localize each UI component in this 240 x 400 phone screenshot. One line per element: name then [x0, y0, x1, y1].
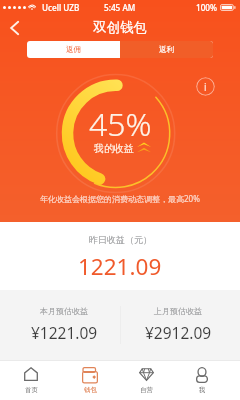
staticText: 1221.09 [78, 251, 162, 282]
staticText: 钱包 [84, 386, 97, 394]
staticText: 返佣 [66, 45, 81, 54]
staticText: 自营 [140, 386, 153, 394]
staticText: 首页 [25, 386, 38, 394]
staticText: 我的收益 [94, 142, 134, 155]
staticText: 上月预估收益 [154, 306, 202, 316]
staticText: 本月预估收益 [40, 306, 88, 316]
button[interactable]: 首页 [9, 360, 53, 400]
button[interactable]: 上月预估收益 [128, 290, 228, 360]
button[interactable]: 返利 [120, 41, 213, 58]
staticText: 年化收益会根据您的消费动态调整，最高20% [40, 193, 200, 204]
staticText: 我 [199, 386, 206, 394]
staticText: 返利 [159, 45, 174, 54]
staticText: 双创钱包 [93, 19, 147, 36]
staticText: Ucell UZB [42, 2, 80, 13]
staticText: 5:45 AM [104, 2, 136, 13]
staticText: 45% [89, 102, 152, 146]
staticText: 昨日收益（元） [89, 234, 152, 245]
staticText: i [204, 80, 207, 94]
button[interactable]: Info [196, 77, 215, 96]
button[interactable]: 自营 [124, 360, 168, 400]
staticText: ¥1221.09 [31, 322, 98, 343]
button[interactable]: 钱包 [68, 360, 112, 400]
button[interactable]: 返佣 [27, 41, 120, 58]
button[interactable]: Back [3, 16, 26, 39]
staticText: 100% [196, 2, 218, 13]
button[interactable]: 我 [180, 360, 224, 400]
staticText: ¥2912.09 [145, 322, 212, 343]
button[interactable]: 本月预估收益 [14, 290, 114, 360]
